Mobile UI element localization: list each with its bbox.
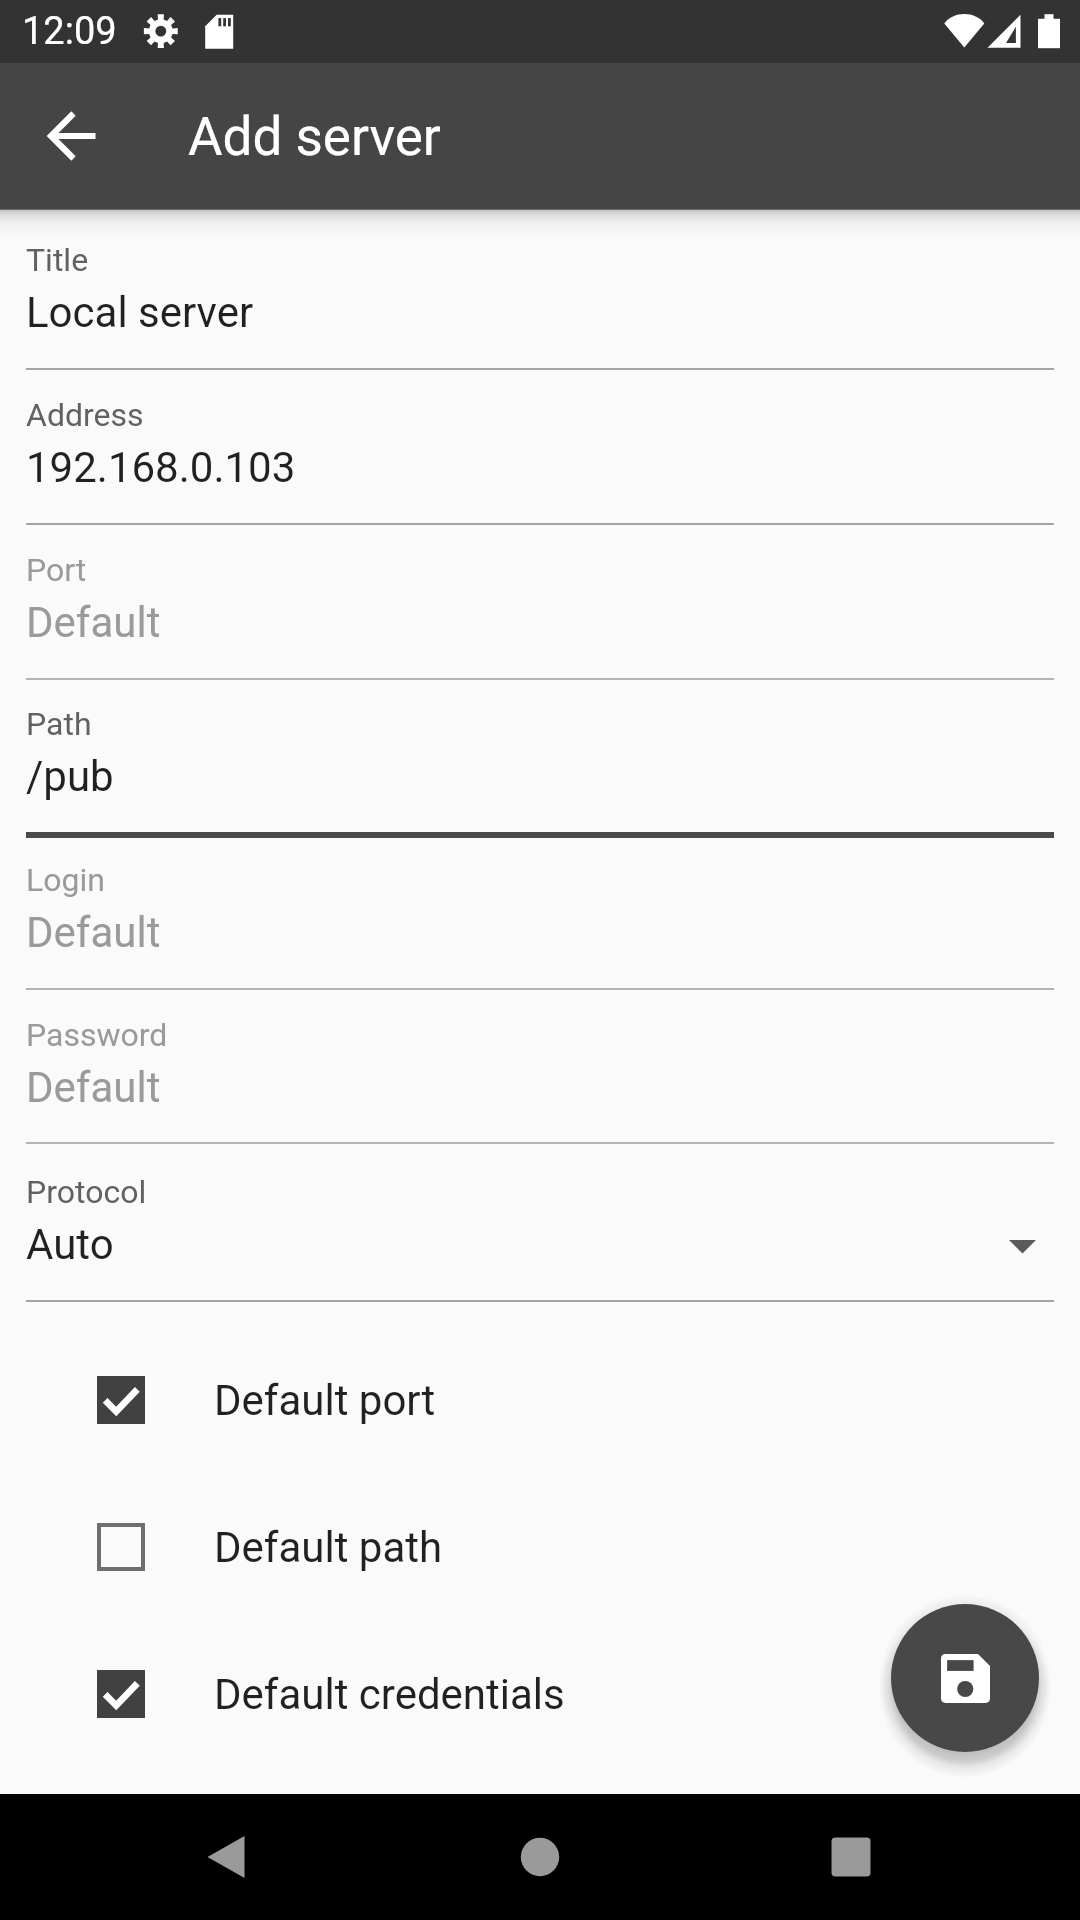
button[interactable]: Path — [26, 690, 1054, 832]
staticText: 12:09 — [22, 9, 117, 54]
button[interactable]: Navigate up — [27, 90, 119, 182]
button[interactable]: Login — [26, 847, 1054, 989]
staticText: Path — [26, 705, 92, 743]
staticText: Port — [26, 551, 87, 589]
button[interactable]: Title — [26, 227, 1054, 369]
button[interactable]: Save — [891, 1604, 1039, 1752]
staticText: Title — [26, 241, 89, 279]
button[interactable]: Home — [477, 1794, 603, 1920]
staticText: Local server — [26, 288, 254, 337]
button[interactable]: Address — [26, 382, 1054, 524]
button[interactable]: Port — [26, 537, 1054, 679]
staticText: Default — [26, 1063, 161, 1112]
staticText: Password — [26, 1016, 168, 1054]
staticText: Login — [26, 861, 105, 899]
staticText: Default port — [214, 1376, 436, 1425]
staticText: 192.168.0.103 — [26, 443, 296, 492]
staticText: Protocol — [26, 1173, 147, 1211]
staticText: Default path — [214, 1523, 443, 1572]
button[interactable]: Back — [163, 1794, 289, 1920]
staticText: Default — [26, 598, 161, 647]
button[interactable]: Password — [26, 1001, 1054, 1143]
button[interactable]: Protocol — [26, 1159, 1054, 1301]
button[interactable]: Recent apps — [788, 1794, 914, 1920]
button[interactable]: Default path — [0, 1473, 1080, 1621]
staticText: /pub — [26, 752, 114, 801]
staticText: Auto — [26, 1220, 114, 1269]
staticText: Address — [26, 396, 144, 434]
button[interactable]: Default credentials — [0, 1620, 1080, 1768]
staticText: Default credentials — [214, 1670, 565, 1719]
staticText: Default — [26, 908, 161, 957]
button[interactable]: Default port — [0, 1326, 1080, 1474]
staticText: Add server — [188, 106, 441, 168]
